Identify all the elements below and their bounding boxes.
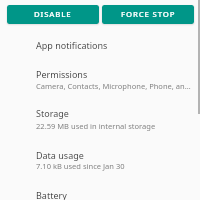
staticText: App notifications xyxy=(36,39,108,51)
staticText: 22.59 MB used in internal storage xyxy=(36,121,156,131)
staticText: Camera, Contacts, Microphone, Phone, an… xyxy=(36,81,191,91)
staticText: 7.10 kB used since Jan 30 xyxy=(36,161,125,171)
button[interactable]: Storage xyxy=(0,99,200,140)
staticText: Battery xyxy=(36,189,67,200)
staticText: Data usage xyxy=(36,149,84,161)
button[interactable]: Permissions xyxy=(0,59,200,99)
button[interactable]: FORCE STOP xyxy=(102,5,194,24)
button[interactable]: DISABLE xyxy=(7,5,99,24)
button[interactable]: Data usage xyxy=(0,140,200,180)
staticText: Permissions xyxy=(36,68,88,80)
staticText: DISABLE xyxy=(34,9,72,20)
button[interactable]: App notifications xyxy=(0,30,200,59)
staticText: FORCE STOP xyxy=(121,9,176,20)
button[interactable]: Battery xyxy=(0,180,200,200)
staticText: Storage xyxy=(36,107,69,119)
